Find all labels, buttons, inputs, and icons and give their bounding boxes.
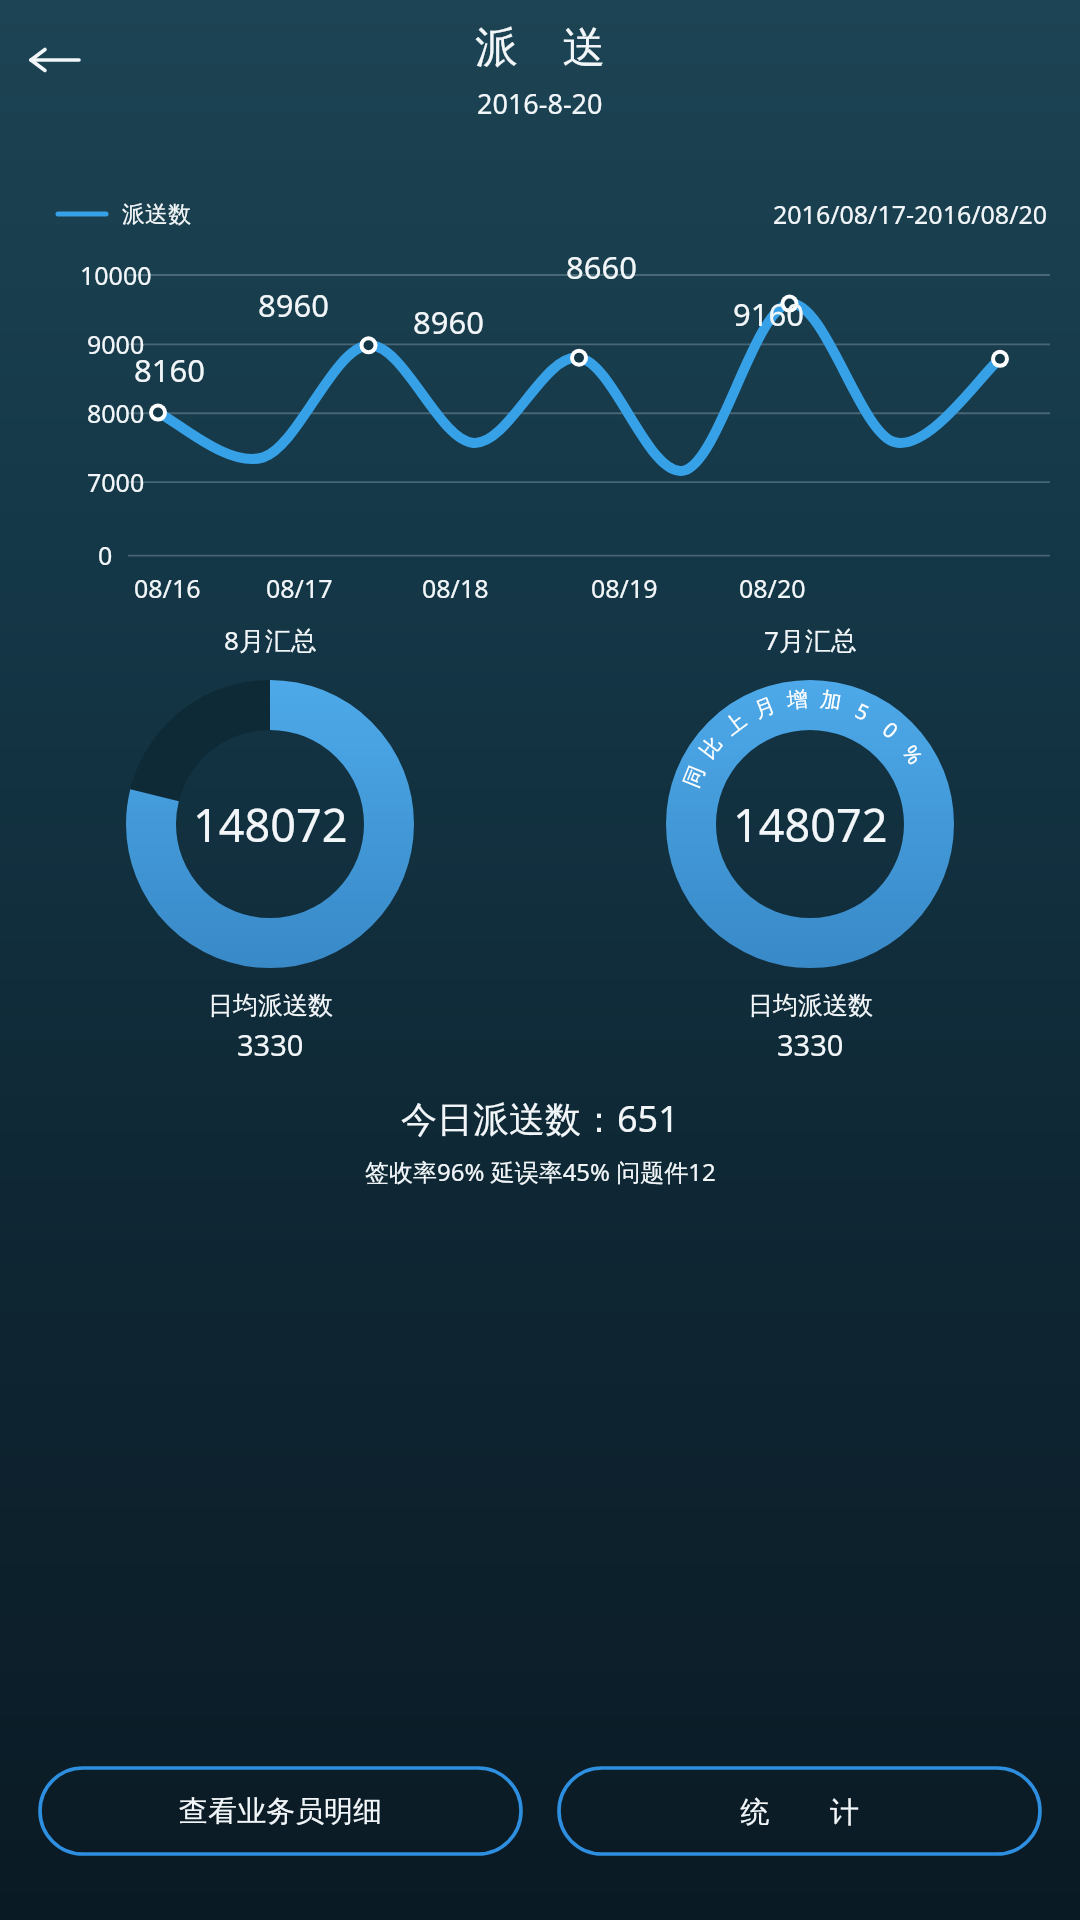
staticText: 8660 bbox=[566, 246, 637, 288]
staticText: 8160 bbox=[134, 349, 205, 391]
staticText: 3330 bbox=[237, 1025, 304, 1064]
staticText: 0 bbox=[98, 538, 113, 572]
staticText: 5 bbox=[851, 696, 875, 728]
staticText: 08/16 bbox=[134, 571, 201, 605]
staticText: 7月汇总 bbox=[764, 622, 857, 658]
staticText: 统 计 bbox=[740, 1791, 859, 1831]
staticText: 增 bbox=[786, 686, 809, 714]
staticText: 7000 bbox=[87, 465, 145, 499]
staticText: 比 bbox=[694, 731, 728, 764]
staticText: 08/17 bbox=[266, 571, 333, 605]
staticText: 9160 bbox=[733, 293, 804, 335]
button[interactable]: 查看业务员明细 bbox=[38, 1766, 523, 1856]
staticText: 2016/08/17-2016/08/20 bbox=[773, 197, 1048, 231]
staticText: 9000 bbox=[87, 327, 145, 361]
staticText: 上 bbox=[719, 707, 751, 741]
staticText: 08/19 bbox=[591, 571, 658, 605]
staticText: 今日派送数：651 bbox=[401, 1094, 679, 1143]
staticText: 3330 bbox=[777, 1025, 844, 1064]
staticText: 2016-8-20 bbox=[477, 85, 603, 122]
staticText: 8960 bbox=[413, 301, 484, 343]
staticText: 月 bbox=[750, 692, 779, 723]
staticText: 0 bbox=[876, 715, 905, 746]
staticText: 同 bbox=[678, 762, 710, 791]
staticText: 日均派送数 bbox=[208, 990, 333, 1021]
staticText: 派送数 bbox=[122, 200, 191, 229]
staticText: 8960 bbox=[258, 284, 329, 326]
staticText: 148072 bbox=[733, 794, 888, 855]
button[interactable]: 统 计 bbox=[557, 1766, 1042, 1856]
staticText: 10000 bbox=[80, 258, 152, 292]
staticText: 签收率96% 延误率45% 问题件12 bbox=[365, 1155, 716, 1188]
button[interactable]: Back bbox=[18, 24, 90, 96]
staticText: 日均派送数 bbox=[748, 990, 873, 1021]
staticText: 08/18 bbox=[422, 571, 489, 605]
staticText: 加 bbox=[819, 686, 844, 715]
staticText: 8000 bbox=[87, 396, 145, 430]
staticText: 148072 bbox=[193, 794, 348, 855]
staticText: 派 送 bbox=[475, 16, 606, 75]
staticText: 08/20 bbox=[739, 571, 806, 605]
staticText: % bbox=[895, 739, 929, 770]
staticText: 查看业务员明细 bbox=[179, 1793, 382, 1830]
staticText: 8月汇总 bbox=[224, 622, 317, 658]
